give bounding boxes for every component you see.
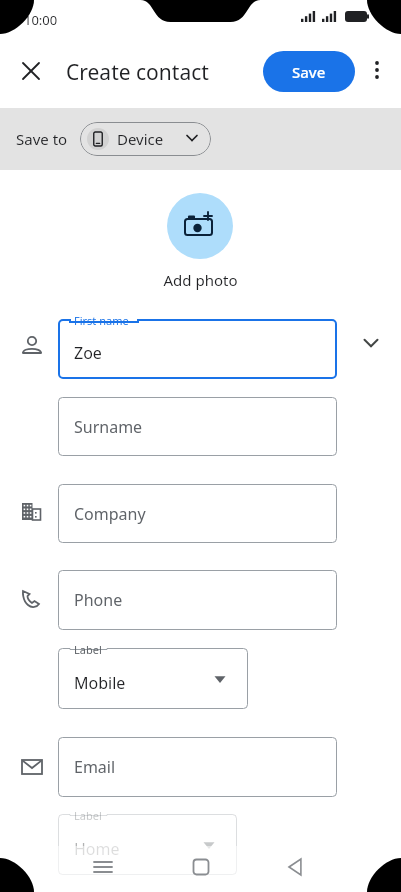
- button[interactable]: Save: [263, 51, 355, 92]
- button[interactable]: Email: [58, 737, 337, 797]
- staticText: Save to: [16, 129, 68, 149]
- button[interactable]: Menu: [83, 855, 123, 879]
- button[interactable]: Label: [58, 814, 237, 875]
- button[interactable]: Device: [80, 122, 211, 156]
- button[interactable]: Back: [276, 855, 316, 879]
- button[interactable]: Company: [58, 484, 337, 543]
- staticText: Phone: [74, 589, 123, 611]
- button[interactable]: Add photo: [167, 193, 233, 259]
- staticText: Save: [292, 62, 326, 82]
- button[interactable]: Phone: [58, 570, 337, 630]
- button[interactable]: Surname: [58, 397, 337, 456]
- button[interactable]: Label: [58, 648, 248, 709]
- staticText: Add photo: [0, 270, 401, 290]
- staticText: Zoe: [74, 342, 102, 364]
- button[interactable]: Close: [13, 53, 49, 89]
- staticText: Device: [117, 129, 164, 149]
- staticText: Label: [74, 642, 102, 657]
- staticText: First name: [74, 313, 129, 328]
- button[interactable]: More options: [360, 53, 394, 87]
- staticText: Company: [74, 503, 146, 525]
- staticText: Surname: [74, 416, 143, 438]
- staticText: Label: [74, 808, 102, 823]
- staticText: 10:00: [24, 11, 58, 29]
- staticText: Mobile: [74, 672, 126, 694]
- staticText: Email: [74, 756, 116, 778]
- staticText: Create contact: [66, 58, 209, 87]
- button[interactable]: Expand name fields: [355, 327, 387, 359]
- staticText: Home: [74, 838, 120, 860]
- button[interactable]: Home: [181, 855, 221, 879]
- button[interactable]: First name: [58, 319, 337, 379]
